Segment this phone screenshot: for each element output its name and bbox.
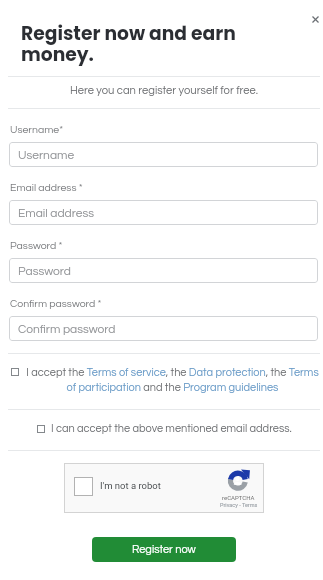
button[interactable]: I can accept the above mentioned email a… (8, 423, 320, 434)
staticText: Register now (132, 544, 196, 555)
staticText: Email address (18, 207, 94, 219)
staticText: I accept the Terms of service, the Data … (24, 367, 321, 393)
staticText: Confirm password (18, 323, 116, 335)
staticText: Register now and earn money. (21, 20, 236, 67)
button[interactable]: Password (9, 258, 318, 283)
staticText: Confirm password * (10, 298, 102, 309)
button[interactable]: Confirm password (9, 316, 318, 341)
staticText: Privacy - Terms (220, 502, 258, 508)
staticText: Here you can register yourself for free. (70, 85, 259, 97)
staticText: Username (18, 149, 75, 161)
staticText: I can accept the above mentioned email a… (51, 423, 292, 434)
button[interactable]: Username (9, 142, 318, 167)
staticText: I'm not a robot (100, 480, 161, 491)
button[interactable]: I'm not a robot (74, 477, 93, 496)
staticText: reCAPTCHA (222, 494, 255, 501)
button[interactable]: Register now (92, 537, 236, 562)
staticText: Email address * (10, 182, 83, 193)
staticText: Password (18, 265, 71, 277)
staticText: Username* (10, 124, 64, 135)
button[interactable]: Close (305, 9, 323, 29)
staticText: Password * (10, 240, 63, 251)
button[interactable]: Email address (9, 200, 318, 225)
